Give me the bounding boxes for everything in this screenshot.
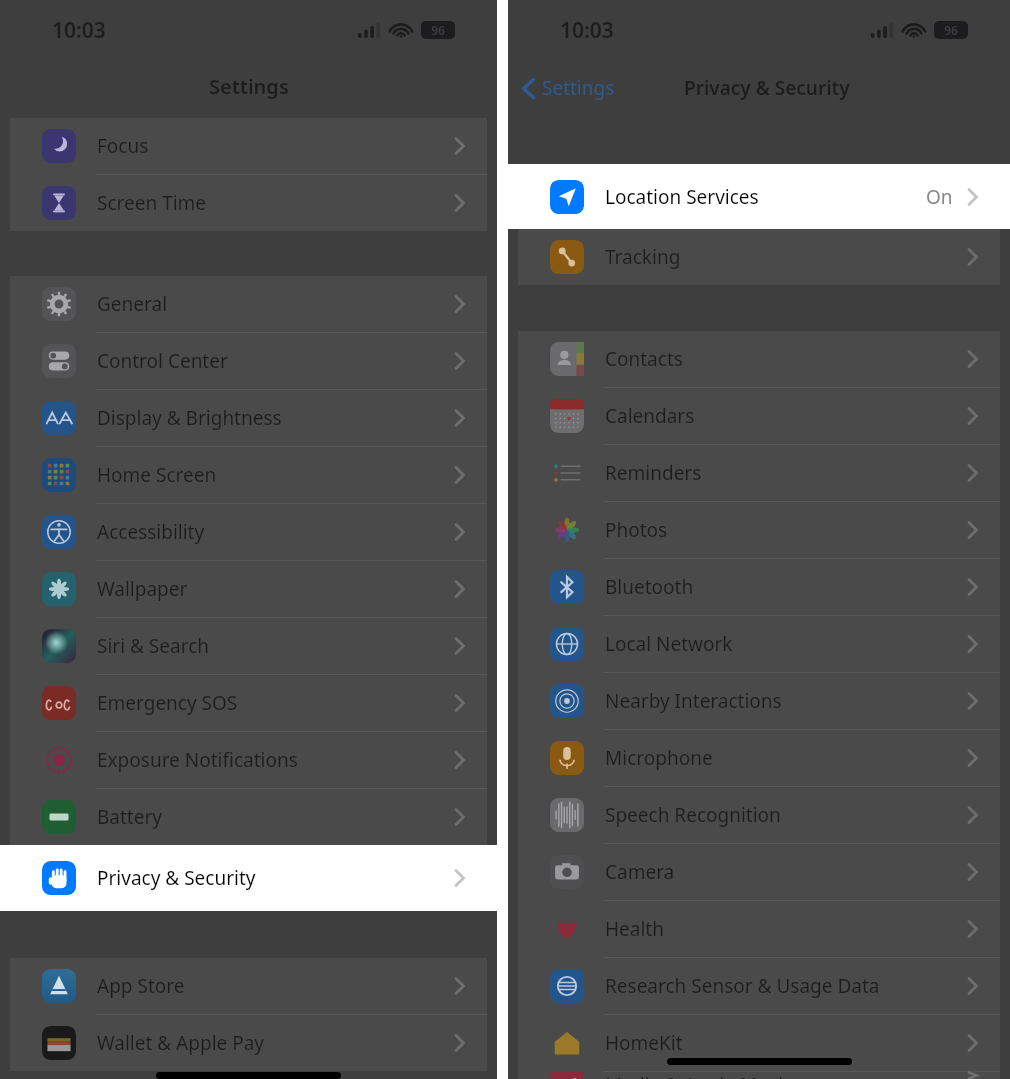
staticText: 10:03 [52,16,106,45]
staticText: Microphone [605,745,713,771]
button[interactable]: Nearby Interactions [518,673,1000,730]
button[interactable]: Speech Recognition [518,787,1000,844]
button[interactable]: Privacy & Security [0,845,497,911]
button[interactable]: App Store [10,958,487,1015]
staticText: Display & Brightness [97,405,282,431]
button[interactable]: Display & Brightness [10,390,487,447]
staticText: Nearby Interactions [605,688,782,714]
button[interactable]: Local Network [518,616,1000,673]
button[interactable]: Wallet & Apple Pay [10,1015,487,1071]
button[interactable]: Contacts [518,331,1000,388]
staticText: Screen Time [97,190,207,216]
staticText: Media & Apple Music [605,1072,793,1079]
button[interactable]: Control Center [10,333,487,390]
button[interactable]: Health [518,901,1000,958]
staticText: Wallpaper [97,576,188,602]
staticText: HomeKit [605,1030,683,1056]
staticText: General [97,291,168,317]
staticText: Local Network [605,631,733,657]
staticText: Exposure Notifications [97,747,298,773]
button[interactable]: Tracking [518,229,1000,285]
button[interactable]: General [10,276,487,333]
button[interactable]: Location Services [508,164,1010,229]
staticText: Wallet & Apple Pay [97,1030,265,1056]
staticText: Calendars [605,403,695,429]
button[interactable]: Siri & Search [10,618,487,675]
staticText: Camera [605,859,675,885]
button[interactable]: Research Sensor & Usage Data [518,958,1000,1015]
staticText: Home Screen [97,462,217,488]
button[interactable]: Media & Apple Music [518,1072,1000,1079]
staticText: Emergency SOS [97,690,238,716]
staticText: Location Services [605,184,759,210]
button[interactable]: Calendars [518,388,1000,445]
staticText: Settings [209,73,289,100]
staticText: Accessibility [97,519,205,545]
staticText: Research Sensor & Usage Data [605,973,880,999]
staticText: Control Center [97,348,228,374]
button[interactable]: Camera [518,844,1000,901]
button[interactable]: Battery [10,789,487,845]
button[interactable]: Microphone [518,730,1000,787]
staticText: 96 [944,22,958,38]
button[interactable]: Focus [10,118,487,175]
button[interactable]: Emergency SOS [10,675,487,732]
staticText: 96 [431,22,445,38]
button[interactable]: Screen Time [10,175,487,231]
staticText: Focus [97,133,149,159]
button[interactable]: Accessibility [10,504,487,561]
staticText: App Store [97,973,185,999]
button[interactable]: Bluetooth [518,559,1000,616]
button[interactable]: HomeKit [518,1015,1000,1072]
staticText: Siri & Search [97,633,210,659]
staticText: Contacts [605,346,683,372]
staticText: Health [605,916,664,942]
staticText: Privacy & Security [684,75,850,101]
staticText: Tracking [605,244,681,270]
button[interactable]: Home Screen [10,447,487,504]
staticText: Privacy & Security [97,865,256,891]
staticText: Speech Recognition [605,802,781,828]
staticText: Battery [97,804,162,830]
staticText: Reminders [605,460,702,486]
staticText: Photos [605,517,668,543]
button[interactable]: Exposure Notifications [10,732,487,789]
staticText: Bluetooth [605,574,694,600]
button[interactable]: Settings [516,71,621,105]
staticText: 10:03 [560,16,614,45]
button[interactable]: Reminders [518,445,1000,502]
button[interactable]: Photos [518,502,1000,559]
staticText: On [926,184,953,210]
staticText: Settings [542,75,615,101]
button[interactable]: Wallpaper [10,561,487,618]
